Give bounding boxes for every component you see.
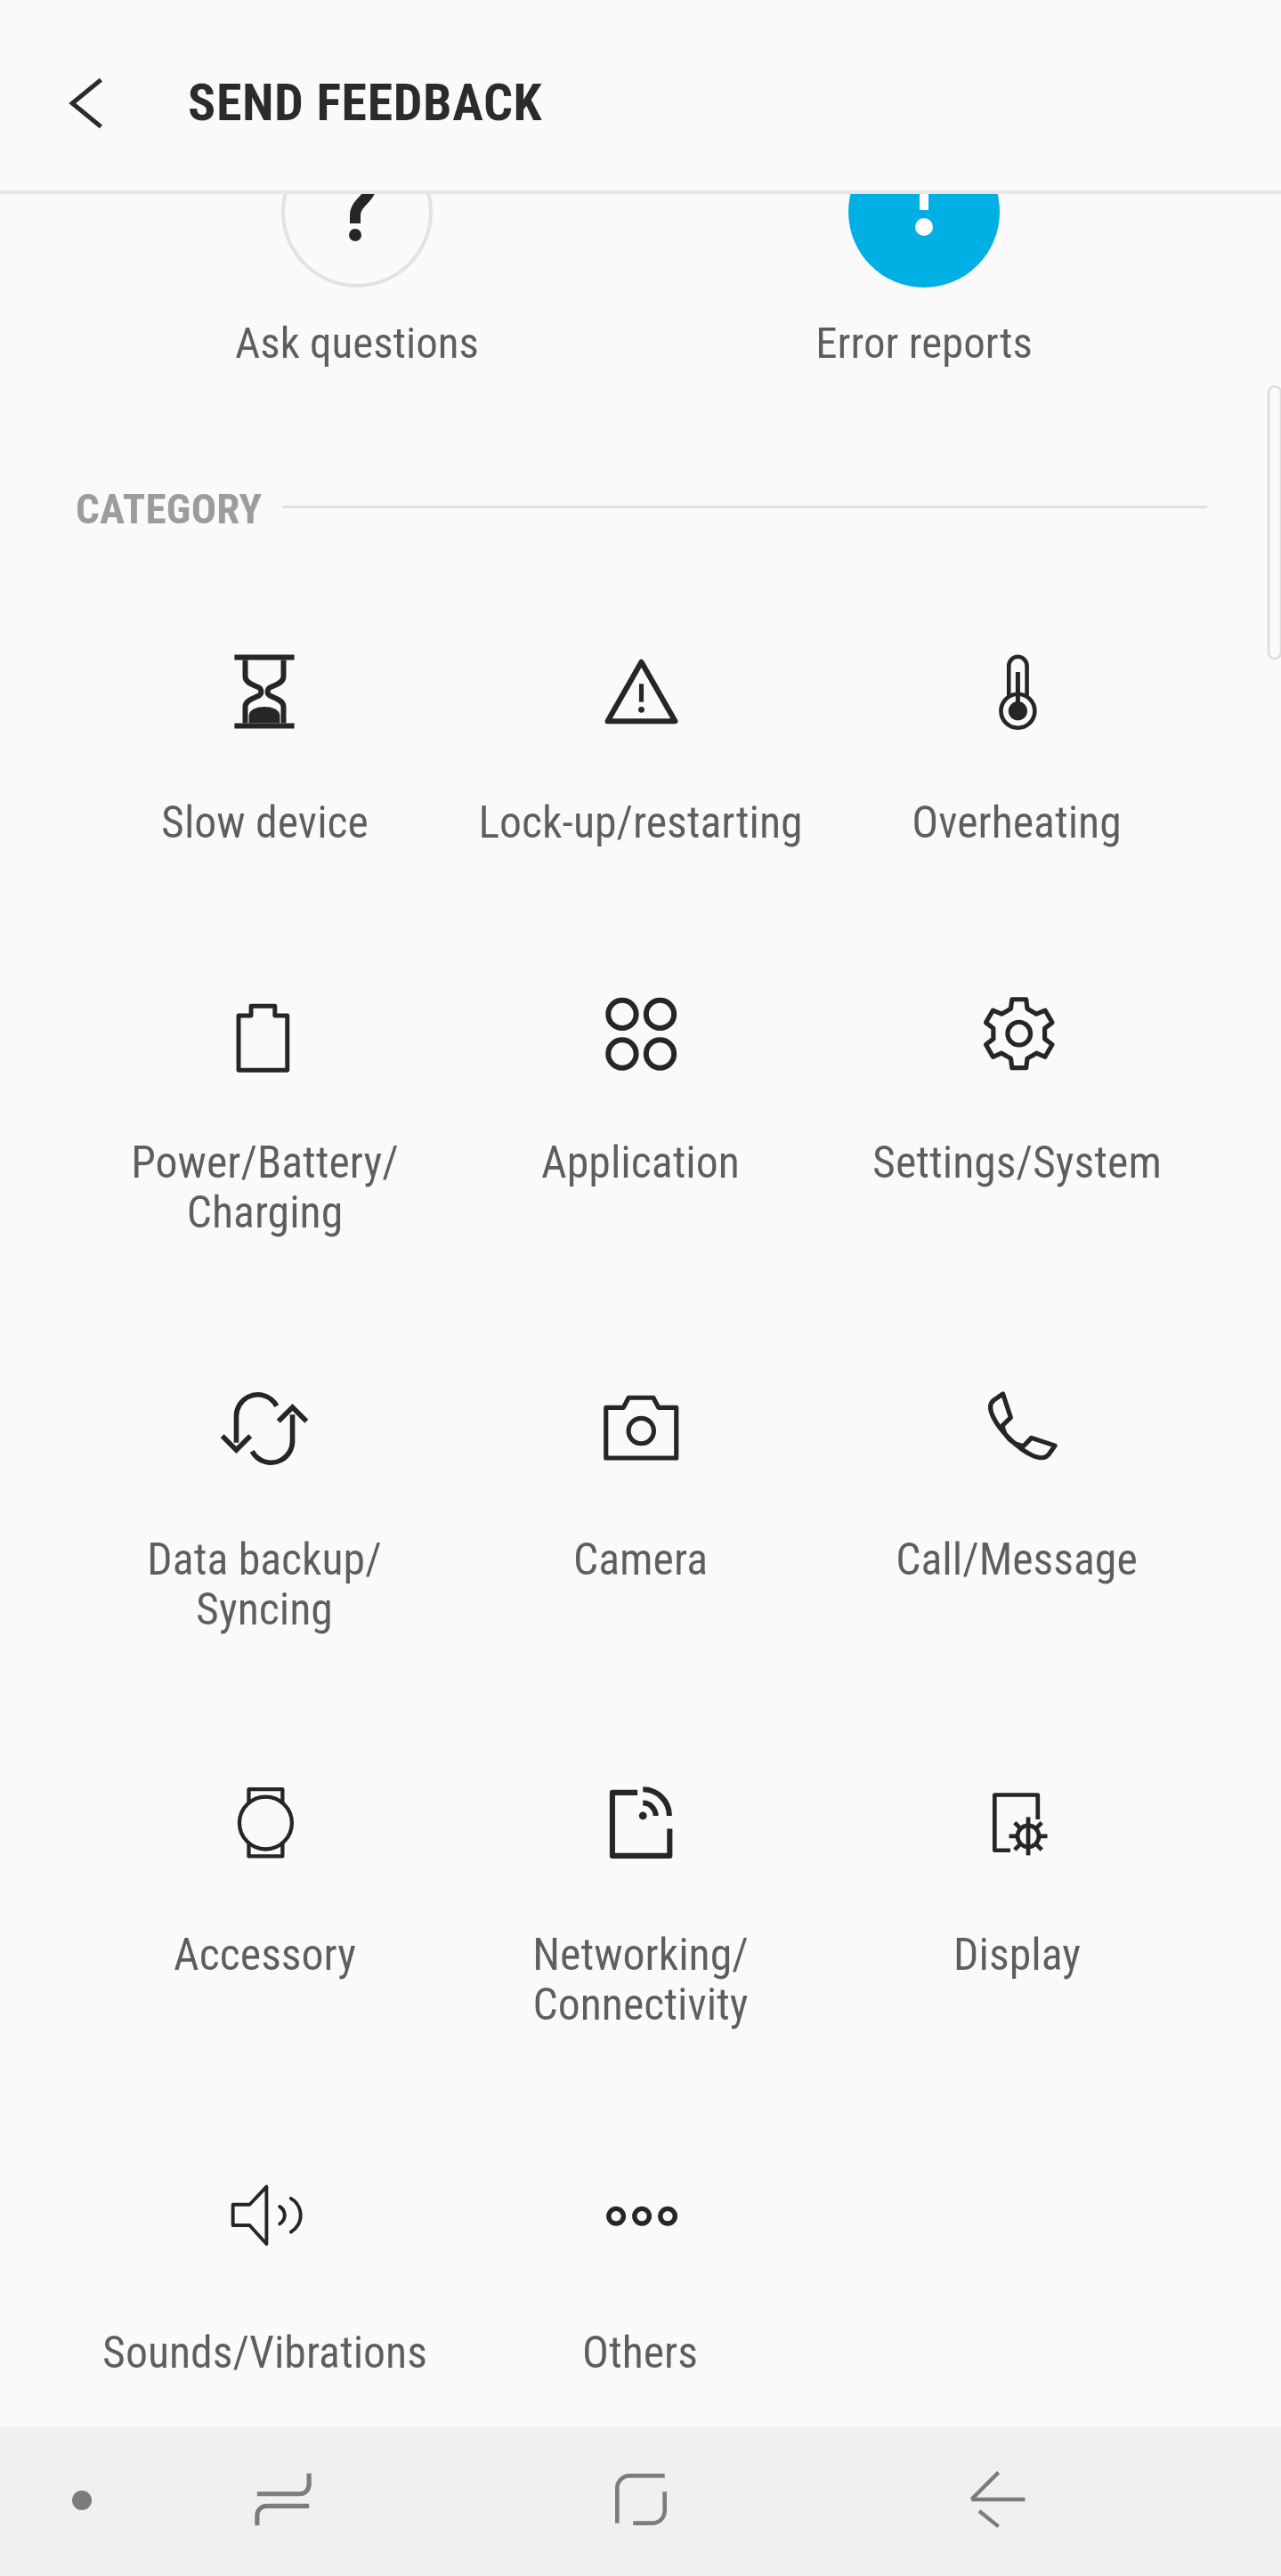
button[interactable]: Application bbox=[453, 992, 827, 1188]
staticText: SEND FEEDBACK bbox=[188, 72, 543, 133]
staticText: Overheating bbox=[912, 797, 1122, 848]
button[interactable]: Home bbox=[588, 2446, 694, 2553]
staticText: Lock-up/restarting bbox=[478, 797, 803, 848]
staticText: CATEGORY bbox=[76, 484, 263, 533]
button[interactable]: Slow device bbox=[77, 652, 451, 848]
button[interactable]: Recent apps bbox=[230, 2446, 336, 2553]
button[interactable]: Back bbox=[945, 2446, 1051, 2553]
button[interactable]: Notifications bbox=[37, 2456, 126, 2545]
button[interactable]: Settings/System bbox=[830, 992, 1204, 1188]
button[interactable]: Others bbox=[453, 2182, 827, 2378]
button[interactable]: Sounds/Vibrations bbox=[77, 2182, 451, 2378]
button[interactable]: Data backup/ Syncing bbox=[77, 1389, 451, 1635]
staticText: Ask questions bbox=[1, 318, 713, 369]
staticText: Settings/System bbox=[872, 1137, 1162, 1188]
staticText: Others bbox=[582, 2327, 698, 2378]
staticText: Slow device bbox=[161, 797, 369, 848]
staticText: Display bbox=[953, 1929, 1081, 1981]
button[interactable]: Display bbox=[830, 1784, 1204, 1981]
staticText: Application bbox=[541, 1137, 740, 1188]
button[interactable]: Camera bbox=[453, 1389, 827, 1585]
button[interactable]: Call/Message bbox=[830, 1389, 1204, 1585]
button[interactable]: Overheating bbox=[830, 652, 1204, 848]
staticText: Networking/ Connectivity bbox=[532, 1929, 749, 2030]
staticText: Data backup/ Syncing bbox=[147, 1534, 382, 1635]
staticText: Camera bbox=[573, 1534, 708, 1585]
button[interactable]: Navigate up bbox=[50, 68, 121, 139]
button[interactable]: Networking/ Connectivity bbox=[453, 1784, 827, 2030]
staticText: Power/Battery/ Charging bbox=[131, 1137, 399, 1238]
staticText: Accessory bbox=[174, 1929, 356, 1981]
staticText: Error reports bbox=[568, 318, 1280, 369]
staticText: Sounds/Vibrations bbox=[102, 2327, 427, 2378]
staticText: Call/Message bbox=[896, 1534, 1138, 1585]
button[interactable]: Accessory bbox=[77, 1784, 451, 1981]
button[interactable]: Lock-up/restarting bbox=[453, 652, 827, 848]
button[interactable]: Power/Battery/ Charging bbox=[77, 992, 451, 1238]
